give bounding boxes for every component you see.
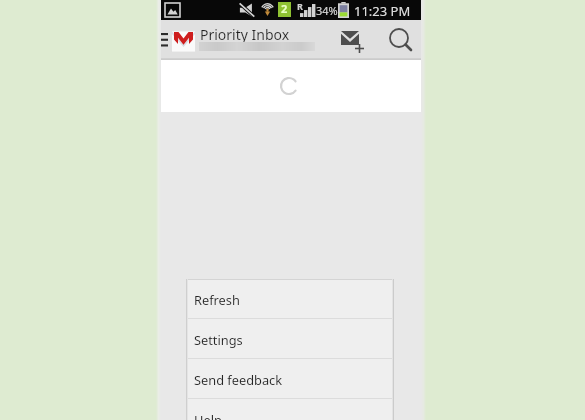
staticText: 34% — [316, 3, 338, 18]
staticText: Help — [194, 411, 222, 420]
staticText: 2 — [281, 1, 288, 16]
button[interactable]: Refresh — [186, 279, 394, 319]
staticText: Settings — [194, 331, 243, 348]
button[interactable]: Settings — [186, 319, 394, 359]
button[interactable]: Open navigation drawer — [159, 33, 168, 47]
button[interactable]: Help — [186, 399, 394, 420]
button[interactable]: Compose — [333, 24, 369, 56]
button[interactable]: Priority Inbox — [199, 22, 329, 56]
button[interactable]: Send feedback — [186, 359, 394, 399]
staticText: Priority Inbox — [200, 25, 290, 44]
staticText: Refresh — [194, 291, 240, 308]
staticText: 11:23 PM — [354, 2, 411, 20]
staticText: Send feedback — [194, 371, 283, 388]
button[interactable]: Search — [383, 24, 415, 58]
staticText: R — [297, 0, 303, 12]
